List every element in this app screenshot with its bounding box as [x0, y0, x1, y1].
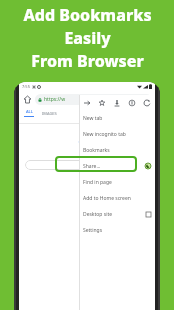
button[interactable]: Page info [127, 98, 137, 108]
staticText: 7:55 [22, 84, 30, 89]
button[interactable]: New tab [79, 110, 155, 126]
button[interactable]: Add to Home screen [79, 190, 155, 206]
staticText: New incognito tab [83, 131, 126, 138]
button[interactable]: IMAGES [42, 111, 57, 116]
staticText: Settings [83, 227, 103, 234]
button[interactable]: Settings [79, 222, 155, 238]
button[interactable]: Downloads [112, 98, 122, 108]
staticText: From Browser [31, 50, 144, 72]
button[interactable]: ALL [24, 109, 34, 117]
button[interactable]: Bookmarks [79, 142, 155, 158]
button[interactable]: New incognito tab [79, 126, 155, 142]
staticText: Desktop site [83, 211, 113, 218]
button[interactable]: Find in page [79, 174, 155, 190]
staticText: Share... [83, 163, 101, 170]
button[interactable]: Desktop site [79, 206, 155, 222]
button[interactable] [25, 160, 149, 170]
staticText: Add Bookmarks [23, 4, 152, 26]
button[interactable]: Reload [142, 98, 152, 108]
staticText: Add to Home screen [83, 195, 131, 202]
button[interactable]: https://w [35, 94, 152, 105]
staticText: Bookmarks [83, 147, 110, 154]
staticText: Find in page [83, 179, 112, 186]
button[interactable]: Bookmark [97, 98, 107, 108]
staticText: IMAGES [42, 111, 57, 116]
button[interactable]: Home [22, 94, 33, 105]
button[interactable]: Share... [79, 158, 155, 174]
staticText: Google [80, 176, 94, 181]
staticText: ALL [26, 109, 33, 114]
staticText: Easily [64, 27, 111, 49]
staticText: New tab [83, 115, 103, 122]
button[interactable]: Forward [82, 98, 92, 108]
staticText: https://w [44, 96, 66, 103]
